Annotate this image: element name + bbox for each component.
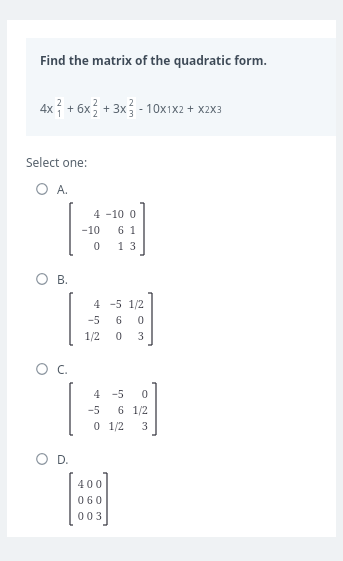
staticText: 1/2 [128,296,144,311]
staticText: 1 [129,222,136,237]
staticText: 2 [205,104,210,115]
staticText: 3 [95,508,102,523]
staticText: 6 [115,312,122,327]
staticText: 3 [141,418,148,433]
staticText: 0 [115,328,122,343]
staticText: −10 [105,206,124,221]
staticText: Find the matrix of the quadratic form. [40,52,267,68]
staticText: 3 [129,108,134,119]
staticText: −5 [87,312,100,327]
staticText: x [160,100,167,116]
staticText: C. [57,361,68,377]
staticText: 1 [167,104,172,115]
staticText: 0 [129,206,136,221]
staticText: −5 [87,402,100,417]
staticText: A. [57,181,68,197]
staticText: + 6x [64,100,91,116]
staticText: + 3x [100,100,127,116]
staticText: 0 [95,476,102,491]
staticText: - 10 [136,100,160,116]
staticText: 4 [93,386,100,401]
staticText: 2 [129,97,134,108]
staticText: 4 [93,206,100,221]
staticText: 4 [93,296,100,311]
staticText: 6 [117,222,124,237]
button[interactable]: A. [36,179,336,199]
staticText: 1/2 [132,402,148,417]
staticText: B. [57,271,68,287]
staticText: −10 [81,222,100,237]
staticText: 0 [137,312,144,327]
staticText: 3 [137,328,144,343]
staticText: 2 [93,108,98,119]
staticText: 1 [57,108,62,119]
button[interactable]: C. [36,359,336,379]
staticText: 3 [129,238,136,253]
staticText: 0 [95,492,102,507]
staticText: x [198,100,205,116]
staticText: 1/2 [108,418,124,433]
staticText: 6 [86,492,93,507]
staticText: 2 [93,97,98,108]
staticText: 2 [179,104,184,115]
staticText: x [210,100,217,116]
staticText: + [184,100,198,116]
staticText: 0 [86,476,93,491]
button[interactable]: D. [36,449,336,469]
staticText: 3 [217,104,222,115]
staticText: 2 [57,97,62,108]
staticText: x [172,100,179,116]
staticText: 0 [141,386,148,401]
staticText: 0 [77,508,84,523]
staticText: 0 [86,508,93,523]
staticText: −5 [111,386,124,401]
staticText: 4x [40,100,54,116]
staticText: −5 [109,296,122,311]
staticText: 4 [77,476,84,491]
button[interactable]: B. [36,269,336,289]
staticText: 1/2 [84,328,100,343]
staticText: 6 [117,402,124,417]
staticText: 0 [93,418,100,433]
staticText: 0 [93,238,100,253]
staticText: 1 [117,238,124,253]
staticText: 0 [77,492,84,507]
staticText: D. [57,451,69,467]
staticText: Select one: [26,154,88,170]
